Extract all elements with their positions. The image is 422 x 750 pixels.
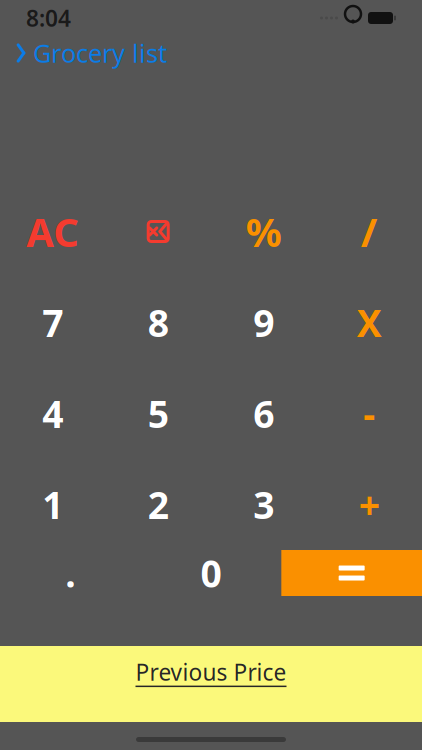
staticText: - xyxy=(363,389,375,438)
staticText: 3 xyxy=(253,480,274,529)
button[interactable]: 1 xyxy=(0,459,105,550)
button[interactable]: % xyxy=(211,186,316,277)
staticText: + xyxy=(359,480,380,529)
button[interactable]: Previous Price xyxy=(0,646,422,722)
button[interactable]: Delete xyxy=(105,186,211,277)
staticText: 0 xyxy=(200,548,221,598)
staticText: . xyxy=(65,548,75,598)
button[interactable]: + xyxy=(316,459,422,550)
button[interactable]: Equals xyxy=(281,550,422,596)
staticText: 2 xyxy=(148,480,169,529)
button[interactable]: Grocery list xyxy=(11,30,171,76)
staticText: X xyxy=(357,298,382,347)
button[interactable]: 4 xyxy=(0,368,105,459)
staticText: % xyxy=(246,205,282,258)
button[interactable]: 6 xyxy=(211,368,316,459)
button[interactable]: X xyxy=(316,277,422,368)
button[interactable]: 0 xyxy=(141,550,281,596)
staticText: 8:04 xyxy=(26,3,71,33)
button[interactable]: - xyxy=(316,368,422,459)
button[interactable]: 9 xyxy=(211,277,316,368)
button[interactable]: AC xyxy=(0,186,105,277)
staticText: / xyxy=(361,205,378,258)
button[interactable]: / xyxy=(316,186,422,277)
staticText: Grocery list xyxy=(33,36,167,70)
button[interactable]: . xyxy=(0,550,141,596)
staticText: 5 xyxy=(148,389,169,438)
staticText: Previous Price xyxy=(135,657,286,687)
staticText: 7 xyxy=(42,298,63,347)
button[interactable]: 5 xyxy=(105,368,211,459)
button[interactable]: 7 xyxy=(0,277,105,368)
staticText: 6 xyxy=(253,389,274,438)
staticText: 4 xyxy=(42,389,63,438)
staticText: AC xyxy=(26,205,79,258)
staticText: 8 xyxy=(148,298,169,347)
button[interactable]: 2 xyxy=(105,459,211,550)
staticText: 1 xyxy=(42,480,63,529)
button[interactable]: 3 xyxy=(211,459,316,550)
staticText: 9 xyxy=(253,298,274,347)
button[interactable]: 8 xyxy=(105,277,211,368)
